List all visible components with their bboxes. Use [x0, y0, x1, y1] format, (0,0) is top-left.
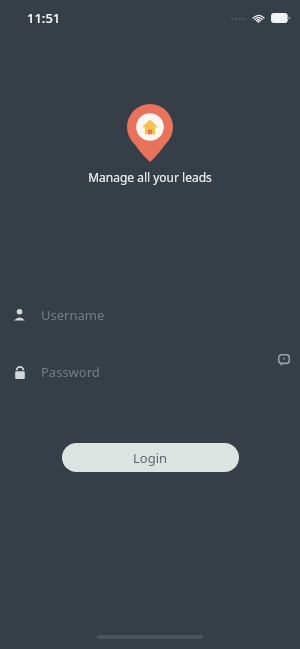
staticText: Login [133, 449, 168, 467]
button[interactable]: Support chat [274, 350, 294, 370]
button[interactable]: Login [62, 443, 239, 472]
button[interactable]: Username [0, 299, 300, 331]
staticText: Username [41, 306, 105, 324]
button[interactable]: Password [0, 356, 300, 388]
staticText: 11:51 [27, 9, 61, 27]
staticText: Password [41, 363, 100, 381]
staticText: Manage all your leads [88, 169, 212, 185]
